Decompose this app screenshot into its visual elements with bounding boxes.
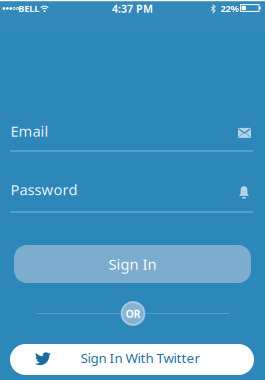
staticText: 4:37 PM bbox=[112, 1, 153, 16]
staticText: Password bbox=[10, 180, 77, 199]
staticText: Email bbox=[10, 121, 48, 141]
button[interactable]: Sign In bbox=[14, 245, 251, 283]
staticText: OR bbox=[125, 306, 140, 321]
button[interactable]: Sign In With Twitter bbox=[10, 344, 254, 375]
staticText: 22% bbox=[220, 2, 238, 15]
staticText: BELL bbox=[18, 2, 39, 15]
staticText: Sign In With Twitter bbox=[80, 349, 200, 367]
button[interactable]: Password bbox=[0, 168, 265, 214]
button[interactable]: Email bbox=[0, 112, 265, 158]
staticText: Sign In bbox=[108, 254, 156, 274]
